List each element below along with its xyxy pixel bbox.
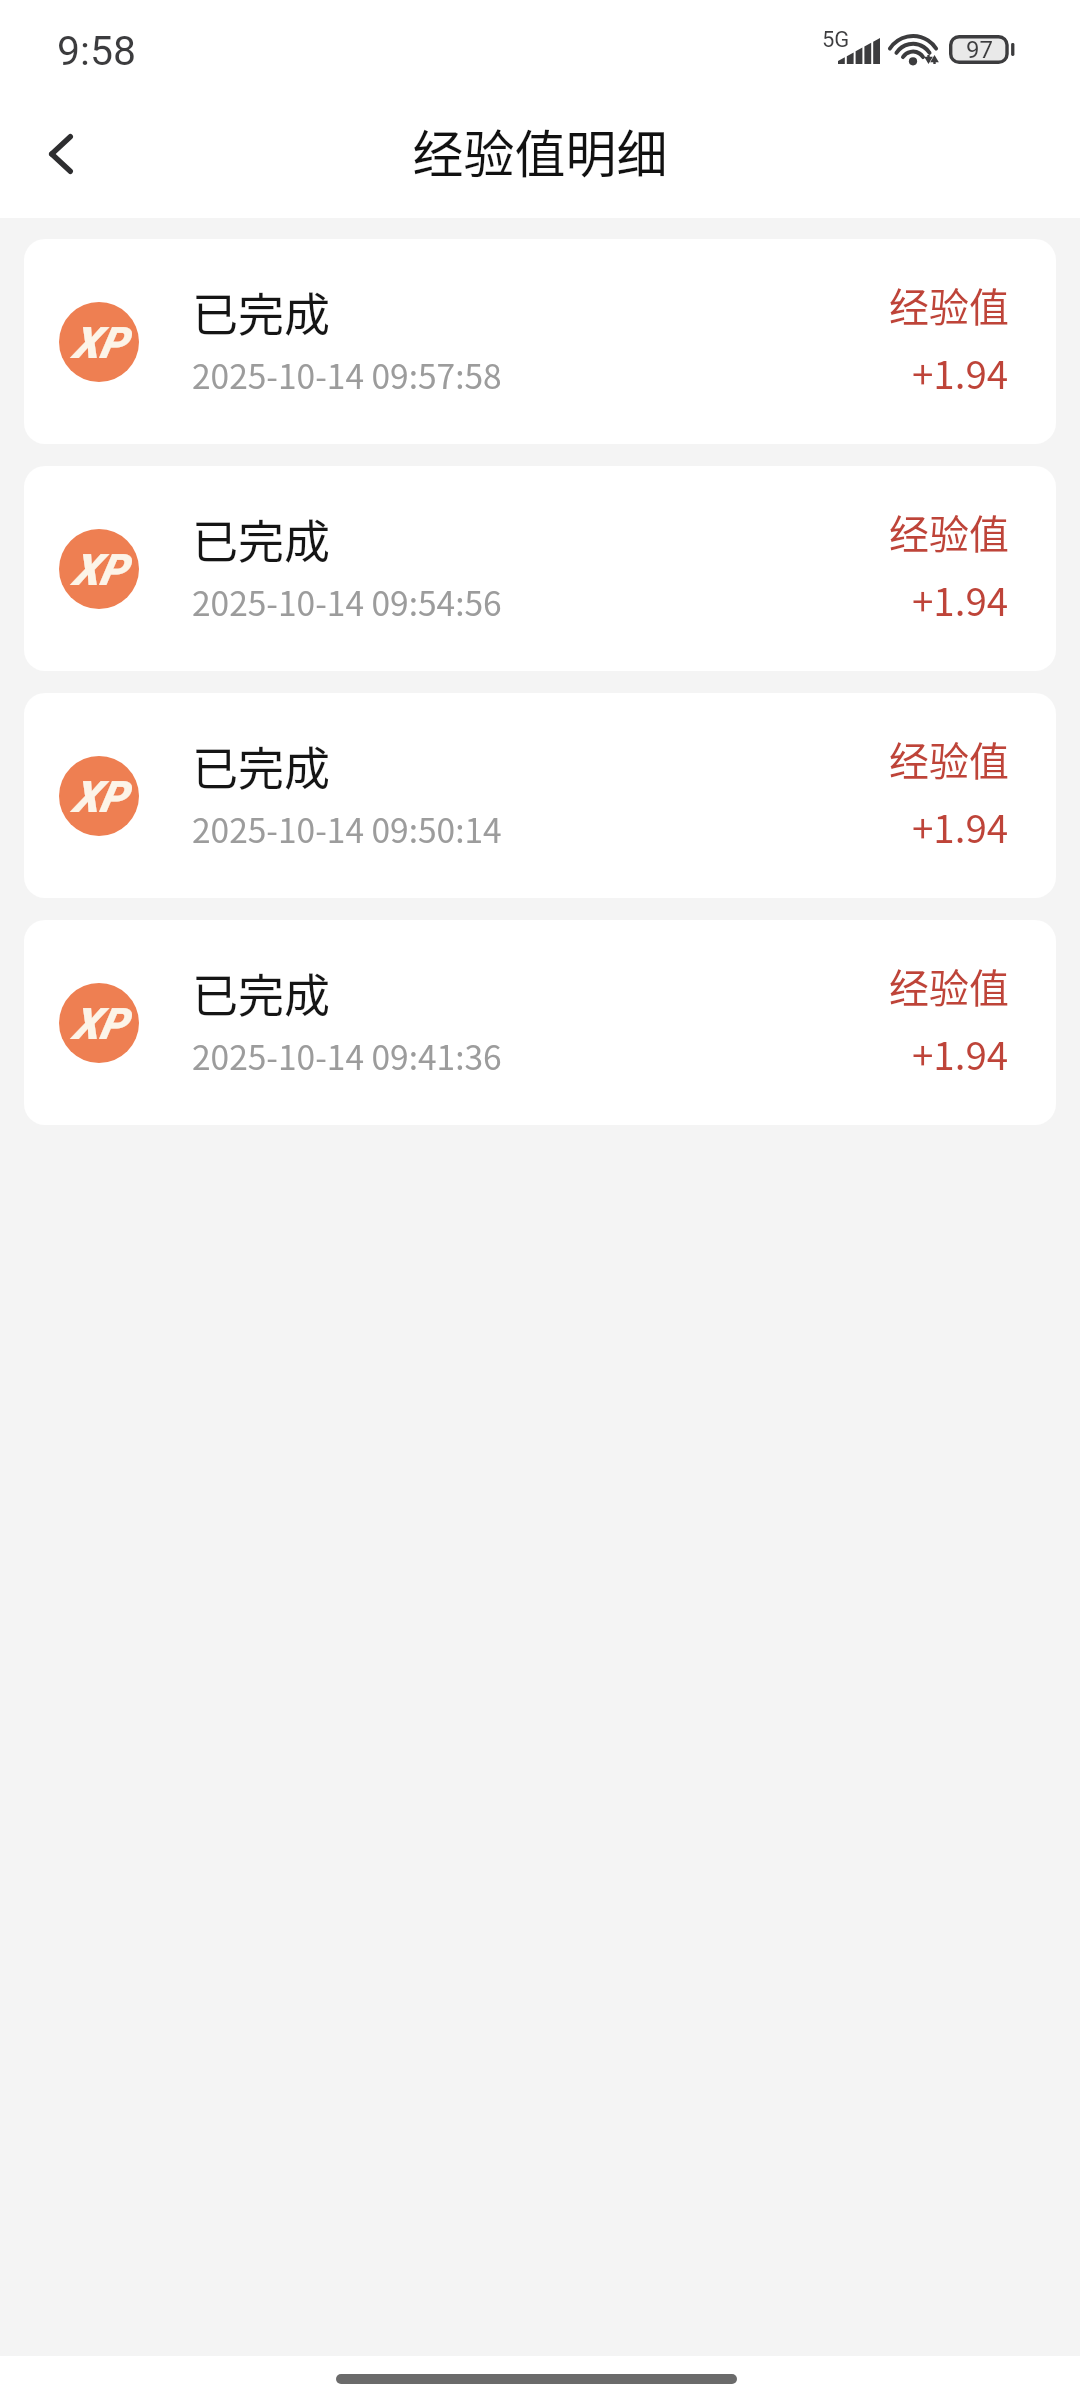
staticText: 已完成 [192,278,330,345]
staticText: XP [72,772,127,823]
staticText: +1.94 [912,1025,1009,1081]
staticText: +1.94 [912,344,1009,400]
staticText: 2025-10-14 09:54:56 [192,577,502,626]
staticText: 经验值 [889,957,1009,1015]
staticText: 9:58 [57,27,137,75]
button[interactable]: XP [24,466,1056,671]
staticText: XP [72,999,127,1050]
staticText: +1.94 [912,571,1009,627]
staticText: 经验值 [889,730,1009,788]
staticText: XP [72,318,127,369]
staticText: 2025-10-14 09:50:14 [192,804,502,853]
staticText: XP [72,545,127,596]
staticText: +1.94 [912,798,1009,854]
staticText: 已完成 [192,505,330,572]
button[interactable]: XP [24,693,1056,898]
staticText: 2025-10-14 09:57:58 [192,350,502,399]
staticText: 已完成 [192,732,330,799]
staticText: 经验值 [889,503,1009,561]
button[interactable]: XP [24,239,1056,444]
staticText: 已完成 [192,959,330,1026]
staticText: 97 [966,36,993,64]
staticText: 5G [822,27,850,53]
staticText: 经验值明细 [412,114,668,188]
button[interactable]: Back [10,103,112,205]
button[interactable]: XP [24,920,1056,1125]
staticText: 2025-10-14 09:41:36 [192,1031,502,1080]
staticText: 经验值 [889,276,1009,334]
